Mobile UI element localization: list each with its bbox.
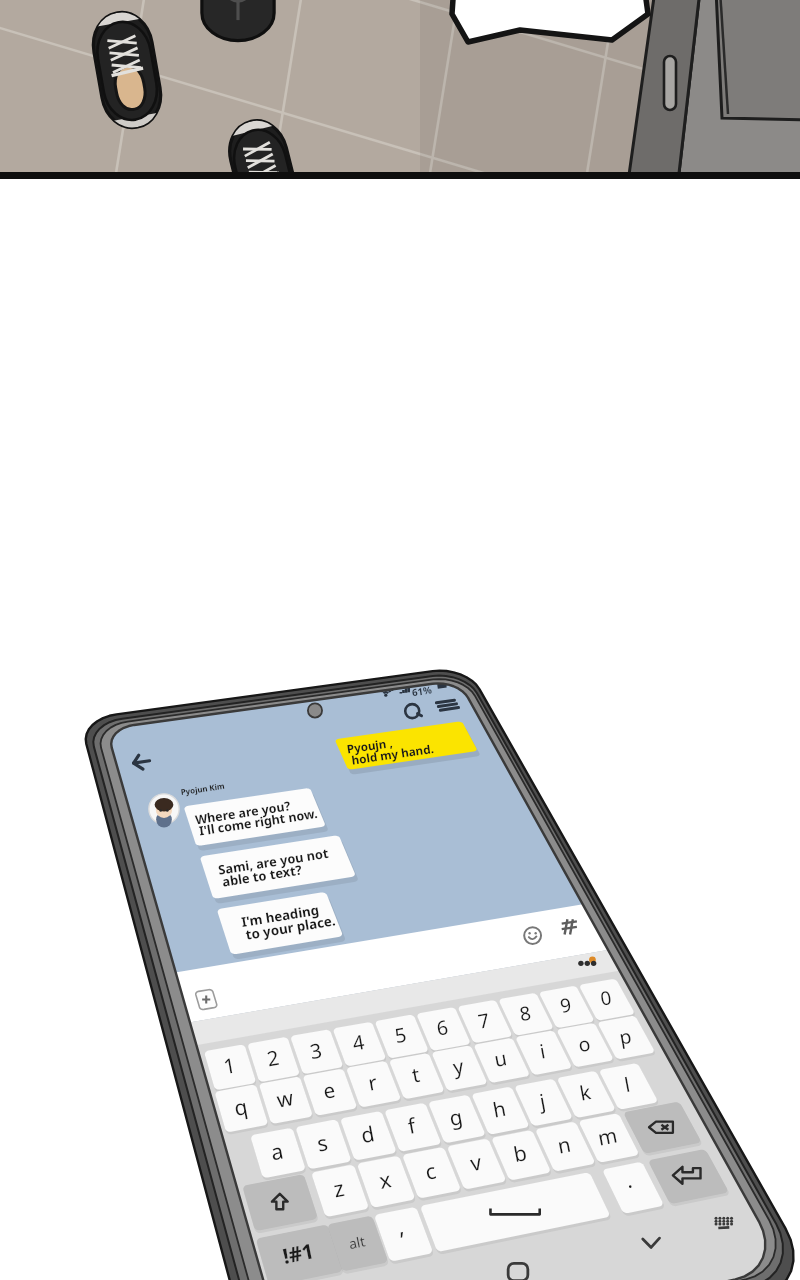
button[interactable]: Comic panel: phone chat screen [0, 0, 800, 1280]
